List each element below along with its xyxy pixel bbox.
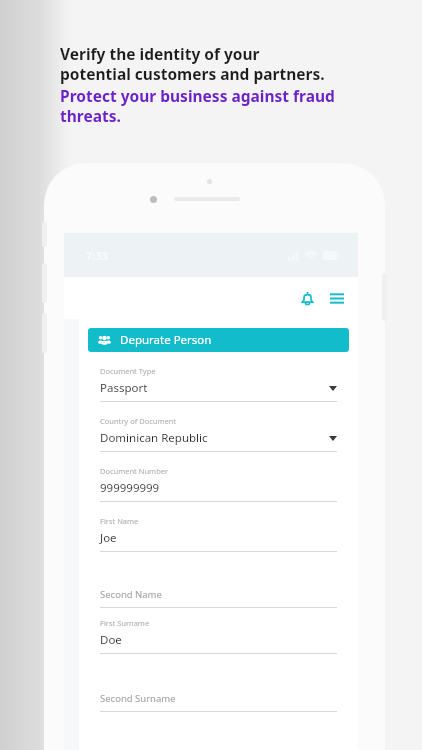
- staticText: Dominican Republic: [100, 430, 208, 446]
- button[interactable]: First Surname: [100, 618, 337, 654]
- staticText: 999999999: [100, 480, 160, 496]
- staticText: 7:33: [86, 248, 108, 263]
- staticText: First Name: [100, 516, 139, 526]
- button[interactable]: Menu: [324, 281, 350, 315]
- button[interactable]: Country of Document: [100, 416, 337, 452]
- button[interactable]: Depurate Person: [88, 328, 349, 352]
- staticText: Document Number: [100, 466, 169, 476]
- button[interactable]: First Name: [100, 516, 337, 552]
- staticText: Verify the identity of your potential cu…: [60, 43, 325, 85]
- button[interactable]: Notifications: [290, 281, 324, 315]
- staticText: Country of Document: [100, 416, 177, 426]
- staticText: Doe: [100, 632, 122, 648]
- button[interactable]: Document Number: [100, 466, 337, 502]
- staticText: Depurate Person: [120, 332, 212, 348]
- staticText: Document Type: [100, 366, 156, 376]
- button[interactable]: Second Name: [100, 588, 337, 608]
- button[interactable]: Second Surname: [100, 692, 337, 712]
- staticText: Second Name: [100, 588, 162, 601]
- staticText: Passport: [100, 380, 148, 396]
- staticText: Protect your business against fraud thre…: [60, 85, 335, 127]
- staticText: First Surname: [100, 618, 150, 628]
- staticText: Joe: [100, 530, 117, 546]
- button[interactable]: Document Type: [100, 366, 337, 402]
- staticText: Second Surname: [100, 692, 176, 705]
